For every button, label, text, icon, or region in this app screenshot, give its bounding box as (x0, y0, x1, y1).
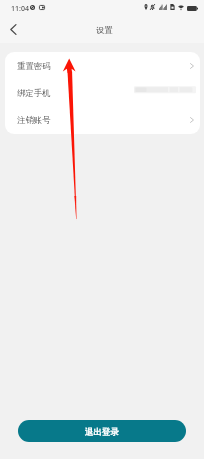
staticText: 设置 (96, 25, 113, 35)
button[interactable]: 注销账号 (5, 106, 200, 133)
staticText: 注销账号 (17, 115, 51, 126)
staticText: 11:04 (11, 4, 29, 14)
button[interactable]: 退出登录 (18, 420, 186, 442)
staticText: 重置密码 (17, 61, 51, 72)
button[interactable]: 绑定手机 (5, 79, 200, 106)
button[interactable]: 重置密码 (5, 52, 200, 79)
button[interactable]: Back (3, 19, 24, 40)
staticText: 退出登录 (85, 427, 119, 438)
staticText: 绑定手机 (17, 88, 51, 99)
